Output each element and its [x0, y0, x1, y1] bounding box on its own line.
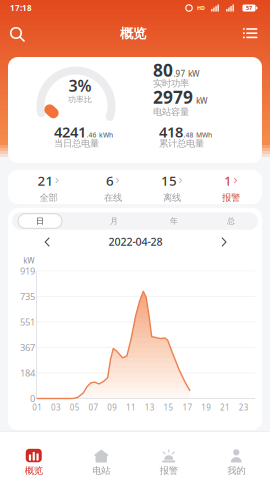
staticText: 07 [89, 402, 99, 413]
staticText: 3% [68, 75, 91, 96]
staticText: 实时功率 [153, 78, 189, 89]
staticText: 19 [201, 402, 211, 413]
staticText: 全部 [39, 192, 57, 203]
staticText: 184 [20, 367, 35, 379]
button[interactable]: 1 [204, 171, 258, 203]
staticText: 80 [153, 58, 173, 81]
staticText: .97 [173, 68, 185, 79]
staticText: 919 [20, 265, 35, 277]
button[interactable]: 6 [86, 171, 140, 203]
button[interactable]: 概览 [4, 442, 64, 480]
staticText: 2022-04-28 [108, 235, 162, 249]
button[interactable]: Menu [237, 21, 263, 46]
staticText: 2979 [153, 85, 193, 108]
staticText: 离线 [163, 192, 181, 203]
staticText: 21 [37, 172, 53, 189]
staticText: 418 [159, 122, 183, 142]
staticText: 09 [107, 402, 117, 413]
staticText: 735 [20, 290, 35, 303]
staticText: 总 [227, 216, 235, 226]
button[interactable]: 15 [145, 171, 199, 203]
staticText: 551 [20, 316, 35, 328]
staticText: 日 [36, 216, 44, 226]
staticText: 在线 [104, 192, 122, 203]
button[interactable]: Search [3, 20, 30, 47]
staticText: kW [194, 95, 208, 106]
staticText: 电站 [92, 465, 110, 476]
button[interactable]: 我的 [206, 442, 266, 480]
staticText: kW [186, 68, 200, 79]
staticText: 15 [164, 402, 174, 413]
button[interactable]: Previous day [41, 236, 53, 248]
staticText: 报警 [222, 192, 240, 203]
staticText: 11 [126, 402, 136, 413]
staticText: 6 [106, 172, 114, 189]
staticText: 57 [246, 4, 252, 12]
staticText: kW [23, 255, 34, 266]
staticText: .46 [86, 130, 96, 139]
staticText: 4241 [54, 122, 86, 142]
staticText: kWh [97, 130, 113, 139]
button[interactable]: 年 [146, 212, 202, 230]
staticText: 年 [170, 216, 178, 226]
staticText: 概览 [25, 465, 43, 476]
button[interactable]: 总 [203, 212, 259, 230]
button[interactable]: Next day [218, 236, 230, 248]
button[interactable]: 月 [86, 212, 142, 230]
staticText: 01 [32, 402, 42, 413]
staticText: 21 [220, 402, 230, 413]
staticText: HD [197, 4, 205, 12]
staticText: 当日总电量 [54, 138, 99, 149]
staticText: 月 [110, 216, 118, 226]
staticText: 05 [70, 402, 80, 413]
staticText: 功率比 [68, 95, 92, 104]
staticText: 17 [182, 402, 192, 413]
staticText: 15 [161, 172, 177, 189]
staticText: 367 [20, 341, 35, 354]
staticText: 累计总电量 [159, 138, 204, 149]
staticText: 1 [224, 172, 232, 189]
staticText: 我的 [227, 465, 245, 476]
staticText: MWh [194, 130, 212, 139]
button[interactable]: 21 [21, 171, 75, 203]
button[interactable]: 电站 [71, 442, 131, 480]
staticText: 电站容量 [153, 106, 189, 118]
button[interactable]: 报警 [139, 442, 199, 480]
staticText: .48 [183, 130, 193, 139]
staticText: 17:18 [10, 3, 32, 13]
staticText: 13 [145, 402, 155, 413]
staticText: 0 [30, 392, 35, 405]
staticText: 23 [239, 402, 249, 413]
button[interactable]: 日 [12, 212, 68, 230]
staticText: 概览 [120, 25, 146, 42]
staticText: 报警 [160, 465, 178, 476]
staticText: 03 [51, 402, 61, 413]
